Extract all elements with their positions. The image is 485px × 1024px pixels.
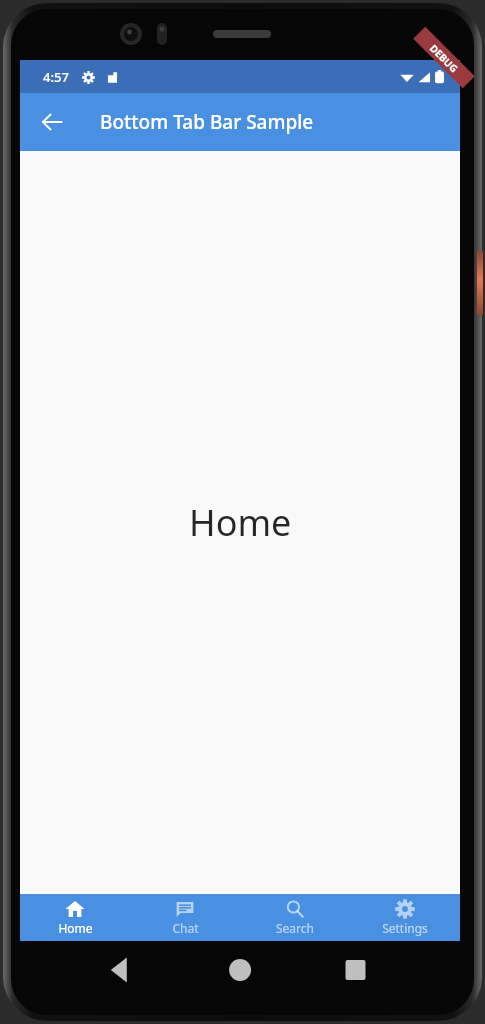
- staticText: 4:57: [43, 68, 69, 86]
- staticText: Home: [58, 920, 93, 936]
- button[interactable]: Home: [20, 894, 130, 941]
- staticText: Search: [276, 920, 314, 936]
- staticText: Settings: [382, 920, 428, 936]
- button[interactable]: Back: [29, 99, 75, 145]
- button[interactable]: Chat: [130, 894, 240, 941]
- button[interactable]: Search: [240, 894, 350, 941]
- staticText: Chat: [172, 920, 199, 936]
- staticText: Bottom Tab Bar Sample: [100, 109, 314, 135]
- staticText: Home: [189, 498, 292, 547]
- button[interactable]: Settings: [350, 894, 460, 941]
- staticText: DEBUG: [427, 41, 461, 75]
